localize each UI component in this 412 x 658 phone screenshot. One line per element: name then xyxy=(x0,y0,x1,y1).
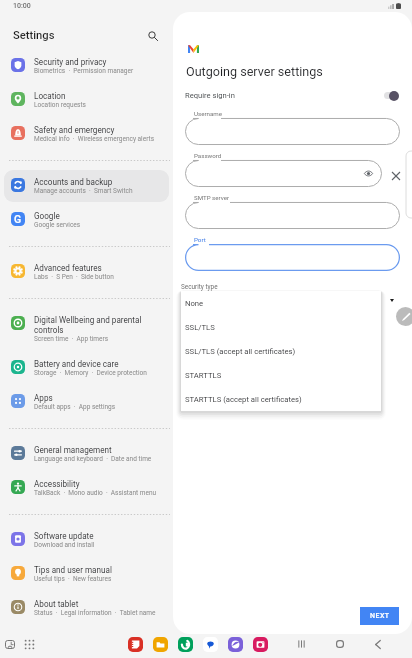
staticText: Software update xyxy=(34,531,94,541)
staticText: SSL/TLS (accept all certificates) xyxy=(185,347,296,356)
button[interactable]: Edit xyxy=(396,307,412,326)
staticText: Settings xyxy=(13,29,55,42)
staticText: Download and install xyxy=(34,541,95,549)
staticText: Default apps · App settings xyxy=(34,403,116,411)
button[interactable]: Safety and emergency xyxy=(4,118,169,150)
staticText: 10:00 xyxy=(13,2,31,10)
staticText: Location xyxy=(34,91,66,101)
staticText: Advanced features xyxy=(34,263,102,273)
staticText: STARTTLS (accept all certificates) xyxy=(185,395,302,404)
staticText: Safety and emergency xyxy=(34,125,115,135)
staticText: G xyxy=(14,213,22,225)
staticText: NEXT xyxy=(370,612,390,620)
button[interactable]: Digital Wellbeing and parental controls xyxy=(4,308,169,350)
button[interactable]: chat xyxy=(203,637,218,652)
button[interactable]: G xyxy=(4,204,169,236)
button[interactable]: STARTTLS xyxy=(181,363,381,387)
button[interactable]: swirl xyxy=(228,637,243,652)
button[interactable]: About tablet xyxy=(4,592,169,624)
button[interactable]: Require sign-in xyxy=(384,90,399,101)
button[interactable]: Apps xyxy=(4,386,169,418)
staticText: Battery and device care xyxy=(34,359,119,369)
staticText: Manage accounts · Smart Switch xyxy=(34,187,133,195)
button[interactable]: Location xyxy=(4,84,169,116)
button[interactable]: Task switcher xyxy=(1,636,18,653)
button[interactable]: Recents xyxy=(292,635,310,653)
staticText: Accounts and backup xyxy=(34,177,113,187)
staticText: Password xyxy=(194,152,222,159)
staticText: Apps xyxy=(34,393,53,403)
staticText: Tips and user manual xyxy=(34,565,112,575)
staticText: Google xyxy=(34,211,60,221)
staticText: General management xyxy=(34,445,112,455)
button[interactable]: All apps xyxy=(21,636,38,653)
staticText: Storage · Memory · Device protection xyxy=(34,369,147,377)
button[interactable]: Clear password xyxy=(388,168,404,184)
button[interactable]: Back xyxy=(369,635,387,653)
staticText: Security type xyxy=(181,283,218,291)
staticText: Require sign-in xyxy=(185,91,235,100)
button[interactable]: note xyxy=(128,637,143,652)
staticText: Username xyxy=(194,110,223,117)
button[interactable]: Search xyxy=(144,27,162,45)
staticText: Screen time · App timers xyxy=(34,335,109,343)
staticText: Language and keyboard · Date and time xyxy=(34,455,152,463)
button[interactable]: Home xyxy=(331,635,349,653)
button[interactable]: Accounts and backup xyxy=(4,170,169,202)
staticText: About tablet xyxy=(34,599,79,609)
staticText: STARTTLS xyxy=(185,371,222,380)
button[interactable]: Tips and user manual xyxy=(4,558,169,590)
button[interactable]: General management xyxy=(4,438,169,470)
button[interactable]: phone xyxy=(178,637,193,652)
button[interactable]: Battery and device care xyxy=(4,352,169,384)
staticText: Biometrics · Permission manager xyxy=(34,67,134,75)
staticText: SMTP server xyxy=(194,194,230,201)
staticText: Google services xyxy=(34,221,81,229)
staticText: None xyxy=(185,299,204,308)
button[interactable]: SSL/TLS (accept all certificates) xyxy=(181,339,381,363)
button[interactable]: None xyxy=(181,291,381,315)
staticText: Location requests xyxy=(34,101,86,109)
staticText: SSL/TLS xyxy=(185,323,215,332)
button[interactable]: STARTTLS (accept all certificates) xyxy=(181,387,381,411)
staticText: Outgoing server settings xyxy=(186,64,323,79)
staticText: Digital Wellbeing and parental controls xyxy=(34,315,165,335)
button[interactable]: cam xyxy=(253,637,268,652)
staticText: Status · Legal information · Tablet name xyxy=(34,609,156,617)
button[interactable]: folder xyxy=(153,637,168,652)
button[interactable]: Accessibility xyxy=(4,472,169,504)
button[interactable]: Security and privacy xyxy=(4,50,169,82)
staticText: Accessibility xyxy=(34,479,80,489)
button[interactable]: SSL/TLS xyxy=(181,315,381,339)
staticText: Port xyxy=(194,236,206,243)
button[interactable]: Advanced features xyxy=(4,256,169,288)
staticText: Useful tips · New features xyxy=(34,575,112,583)
staticText: Labs · S Pen · Side button xyxy=(34,273,114,281)
staticText: TalkBack · Mono audio · Assistant menu xyxy=(34,489,157,497)
button[interactable]: Software update xyxy=(4,524,169,556)
staticText: Security and privacy xyxy=(34,57,107,67)
staticText: Medical info · Wireless emergency alerts xyxy=(34,135,154,143)
button[interactable]: NEXT xyxy=(360,607,399,625)
